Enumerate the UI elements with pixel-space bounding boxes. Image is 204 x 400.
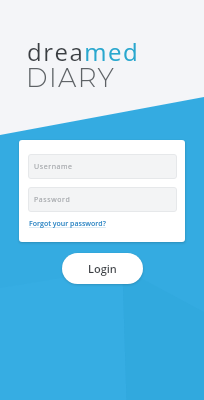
- staticText: Login: [88, 261, 117, 276]
- staticText: DIARY: [26, 62, 116, 94]
- staticText: Username: [34, 162, 73, 172]
- button[interactable]: Login: [62, 253, 143, 284]
- button[interactable]: Username: [28, 154, 177, 179]
- staticText: Forgot your password?: [29, 219, 106, 229]
- staticText: Password: [34, 195, 71, 205]
- button[interactable]: Password: [28, 187, 177, 212]
- staticText: dreamed: [27, 35, 140, 68]
- button[interactable]: Forgot your password?: [29, 219, 106, 229]
